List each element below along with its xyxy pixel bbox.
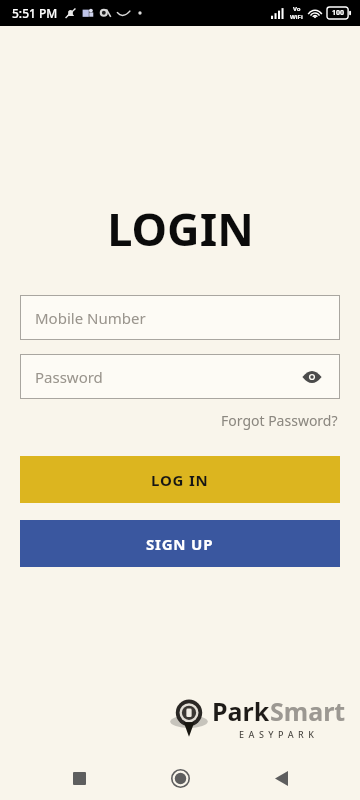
button[interactable]: SIGN UP <box>20 520 340 567</box>
staticText: EASYPARK <box>239 728 319 740</box>
button[interactable]: Forgot Password? <box>219 407 340 434</box>
button[interactable]: Mobile Number <box>20 295 340 340</box>
staticText: Park <box>212 694 270 728</box>
staticText: LOGIN <box>107 198 254 259</box>
staticText: Forgot Password? <box>221 411 338 430</box>
button[interactable]: Home <box>158 756 202 800</box>
staticText: Password <box>35 367 299 387</box>
staticText: LOG IN <box>151 470 209 490</box>
staticText: 100 <box>332 8 345 18</box>
staticText: Vo <box>293 5 301 13</box>
button[interactable]: Back <box>259 756 303 800</box>
button[interactable]: Password <box>20 354 340 399</box>
button[interactable]: Show password <box>299 364 325 390</box>
button[interactable]: LOG IN <box>20 456 340 503</box>
staticText: Smart <box>270 694 346 728</box>
staticText: 5:51 PM <box>12 5 58 21</box>
staticText: WiFi <box>290 13 303 21</box>
button[interactable]: Recent apps <box>57 756 101 800</box>
staticText: Mobile Number <box>35 308 325 328</box>
staticText: SIGN UP <box>146 534 214 554</box>
